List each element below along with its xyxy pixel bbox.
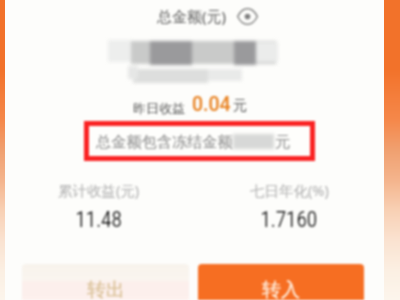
staticText: 转入 [262, 278, 300, 300]
staticText: 七日年化(%) [250, 180, 329, 200]
staticText: 累计收益(元) [58, 180, 140, 200]
button[interactable]: 转入 [198, 264, 364, 300]
staticText: 元 [275, 132, 291, 151]
staticText: 转出 [87, 278, 125, 300]
button[interactable]: 转出 [22, 264, 189, 300]
staticText: 11.48 [75, 207, 122, 233]
staticText: 总金额(元) [157, 6, 227, 26]
staticText: 元 [233, 97, 247, 115]
staticText: 1.7160 [260, 207, 317, 233]
staticText: 总金额包含冻结金额 [96, 132, 233, 151]
button[interactable]: Toggle amount visibility [236, 5, 258, 27]
staticText: 昨日收益 [133, 100, 185, 116]
staticText: 0.04 [192, 93, 231, 116]
